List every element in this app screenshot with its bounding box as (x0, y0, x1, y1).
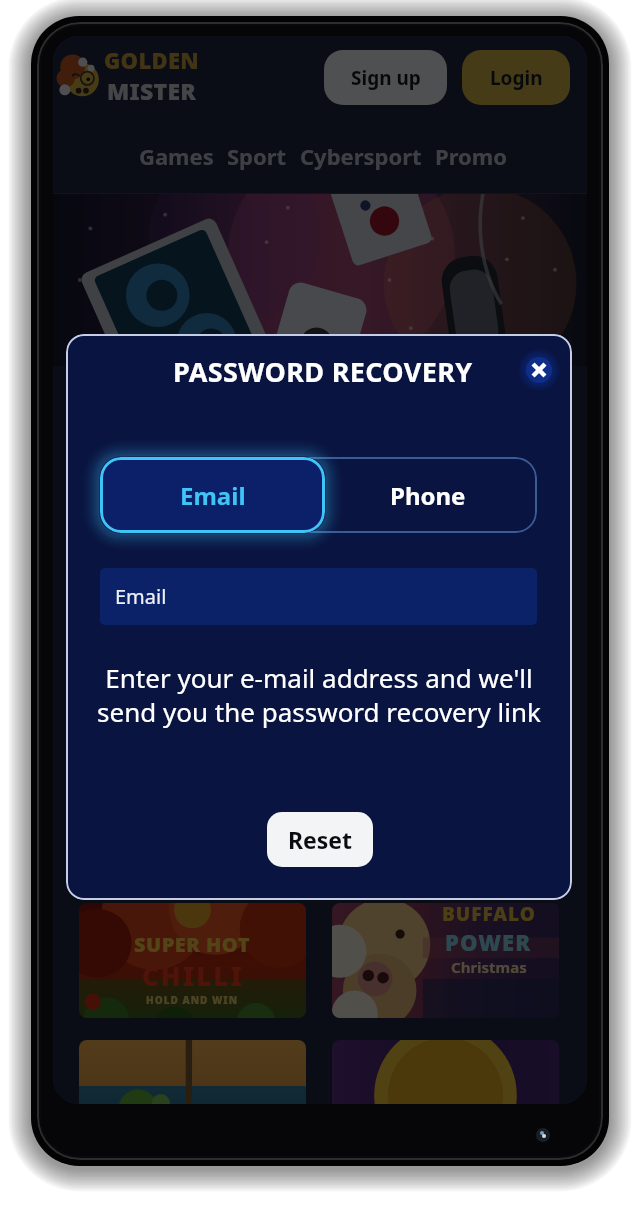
staticText: PASSWORD RECOVERY (173, 353, 473, 390)
staticText: Sign up (351, 65, 421, 91)
button[interactable]: Cybersport (300, 141, 422, 171)
staticText: POWER (445, 927, 532, 957)
button[interactable]: Promo (435, 141, 508, 171)
staticText: Enter your e-mail address and we'll send… (88, 660, 550, 729)
staticText: Reset (288, 824, 353, 855)
staticText: Sport (227, 141, 287, 171)
button[interactable]: Games (139, 141, 214, 171)
button[interactable]: Login (462, 50, 570, 105)
staticText: Cybersport (300, 141, 422, 171)
staticText: Games (139, 141, 214, 171)
button[interactable]: Email (100, 457, 325, 533)
staticText: SUPER HOT (134, 931, 251, 958)
button[interactable]: Close (518, 349, 560, 391)
button[interactable]: BUFFALO (332, 903, 559, 1018)
staticText: Phone (390, 479, 466, 512)
button[interactable]: Sport (227, 141, 287, 171)
staticText: Promo (435, 141, 508, 171)
staticText: Email (115, 583, 167, 610)
staticText: Email (180, 479, 246, 512)
button[interactable]: Reset (267, 812, 373, 867)
staticText: GOLDEN (104, 45, 199, 75)
button[interactable]: Email (100, 568, 537, 625)
button[interactable] (332, 1040, 559, 1104)
staticText: MISTER (107, 75, 197, 106)
staticText: HOLD AND WIN (146, 993, 239, 1007)
button[interactable]: Phone (318, 457, 537, 533)
button[interactable]: SUPER HOT (79, 903, 306, 1018)
staticText: Christmas (451, 957, 527, 977)
button[interactable]: Sign up (324, 50, 447, 105)
staticText: BUFFALO (442, 903, 536, 927)
staticText: CHILLI (142, 958, 244, 993)
staticText: Login (490, 65, 543, 91)
button[interactable] (79, 1040, 306, 1104)
